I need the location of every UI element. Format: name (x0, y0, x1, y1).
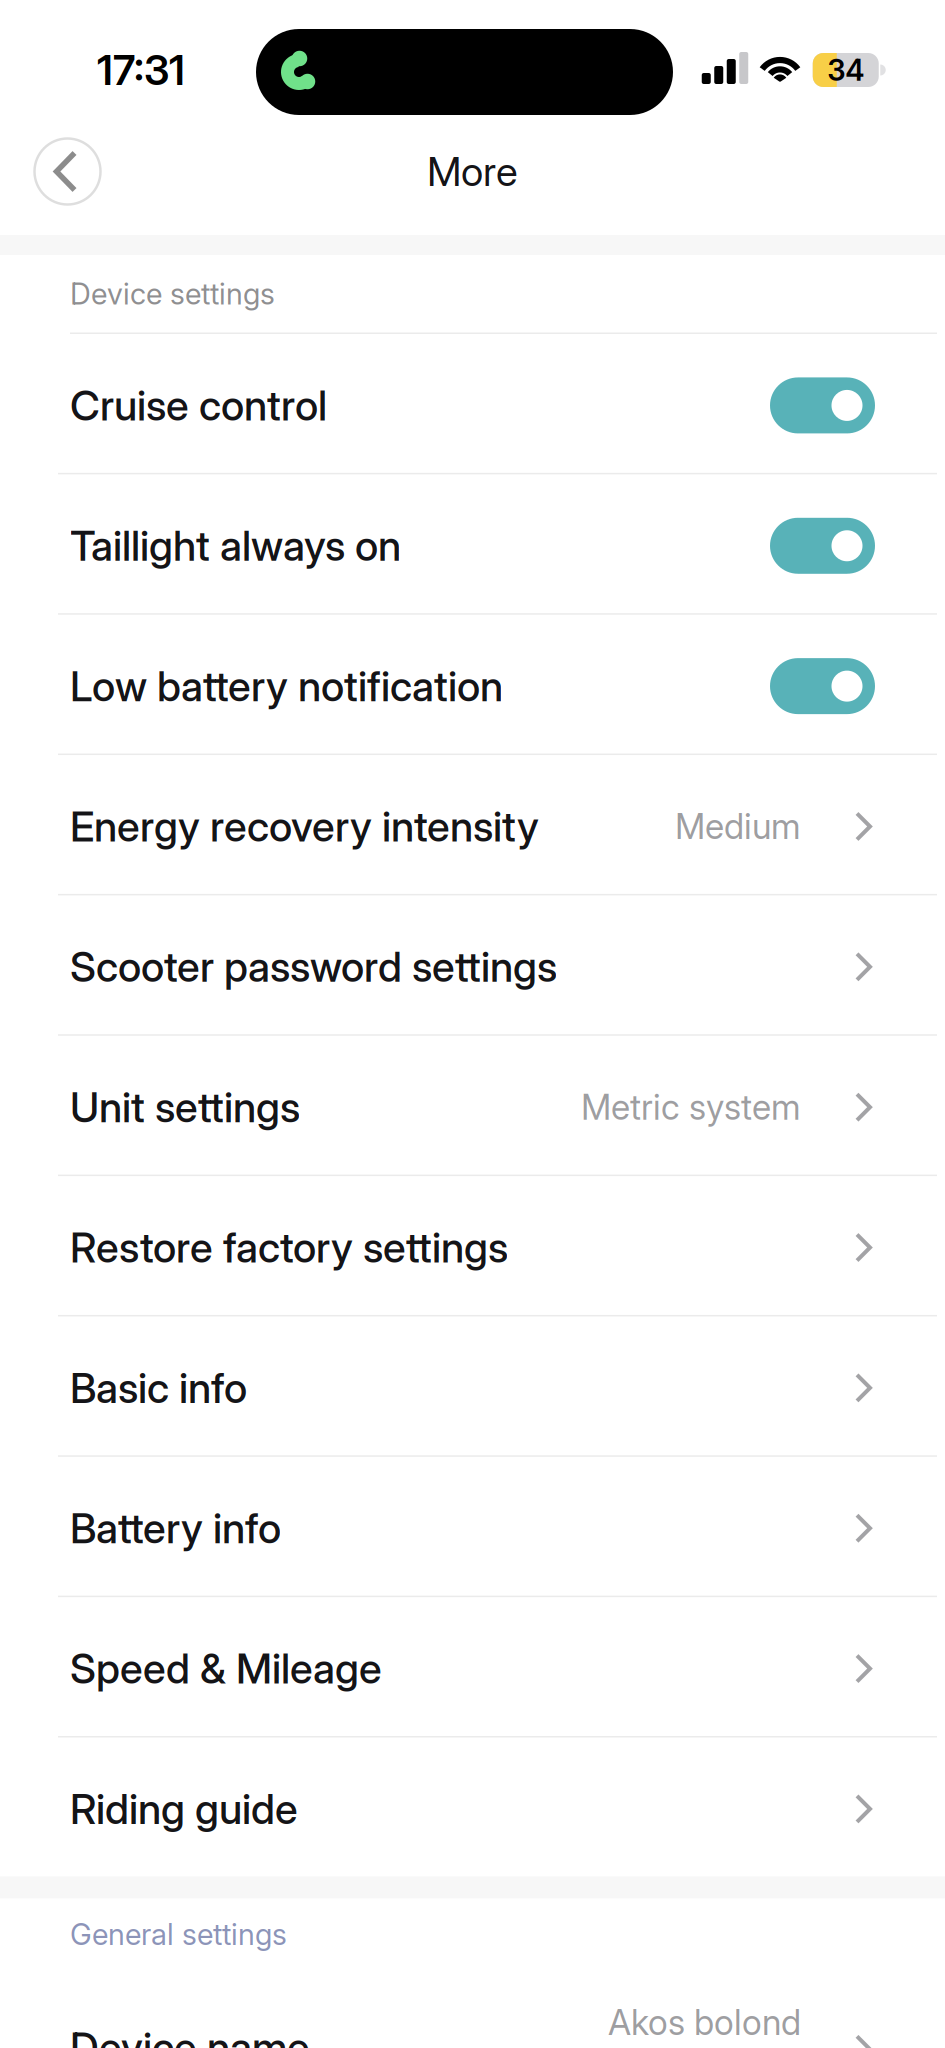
button[interactable]: Restore factory settings (0, 1176, 945, 1315)
button[interactable]: Device name (0, 1970, 945, 2046)
staticText: 17:31 (97, 46, 185, 94)
button[interactable]: Scooter password settings (0, 895, 945, 1034)
staticText: 34 (827, 53, 864, 87)
button[interactable]: Back (34, 138, 100, 204)
button[interactable]: Unit settings (0, 1036, 945, 1175)
staticText: Restore factory settings (70, 1223, 508, 1272)
staticText: Metric system (581, 1087, 801, 1128)
staticText: General settings (70, 1917, 287, 1952)
staticText: Cruise control (70, 381, 327, 430)
staticText: Unit settings (70, 1083, 300, 1132)
button[interactable]: Cruise control (770, 377, 875, 433)
staticText: Taillight always on (70, 521, 401, 570)
staticText: Energy recovery intensity (70, 802, 539, 851)
button[interactable]: Low battery notification (770, 658, 875, 714)
staticText: Device name (70, 2023, 310, 2048)
staticText: Device settings (70, 276, 275, 311)
button[interactable]: Battery info (0, 1457, 945, 1596)
button[interactable]: Taillight always on (770, 518, 875, 574)
button[interactable]: Speed & Mileage (0, 1597, 945, 1736)
button[interactable]: Basic info (0, 1316, 945, 1455)
staticText: Akos bolond (608, 2002, 801, 2043)
staticText: Low battery notification (70, 662, 503, 710)
staticText: Riding guide (70, 1784, 298, 1833)
staticText: Scooter password settings (70, 942, 557, 991)
staticText: Battery info (70, 1504, 281, 1553)
button[interactable]: Riding guide (0, 1737, 945, 1876)
staticText: Medium (675, 806, 801, 847)
staticText: More (427, 148, 518, 195)
staticText: Speed & Mileage (70, 1644, 382, 1693)
staticText: Basic info (70, 1363, 247, 1412)
button[interactable]: Energy recovery intensity (0, 755, 945, 894)
